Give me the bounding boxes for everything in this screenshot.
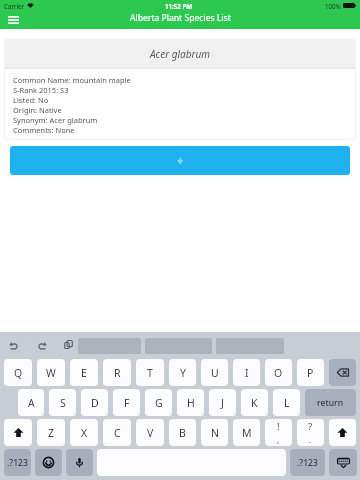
staticText: V [147,426,154,440]
button[interactable]: .?123 [4,449,31,476]
staticText: W [46,366,56,380]
button[interactable]: T [136,359,164,386]
button[interactable]: I [233,359,260,386]
staticText: X [81,426,88,440]
staticText: Listed: No [13,95,49,105]
button[interactable]: Y [169,359,196,386]
button[interactable]: Shift [329,419,356,446]
button[interactable]: Q [4,359,32,386]
staticText: S [60,396,66,410]
staticText: G [155,396,163,410]
button[interactable]: return [305,389,356,416]
button[interactable]: ! [265,419,292,446]
button[interactable]: N [201,419,228,446]
button[interactable]: D [81,389,108,416]
staticText: Y [180,366,186,380]
button[interactable]: Emoji [35,449,62,476]
button[interactable]: W [37,359,65,386]
button[interactable]: Redo [34,337,48,351]
button[interactable]: P [297,359,324,386]
staticText: C [114,426,121,440]
staticText: U [211,366,219,380]
staticText: 11:52 PM [165,2,193,10]
button[interactable]: U [201,359,228,386]
button[interactable]: Z [37,419,65,446]
button[interactable]: V [136,419,164,446]
staticText: . [309,434,312,445]
button[interactable]: C [103,419,131,446]
button[interactable]: ? [297,419,324,446]
staticText: Acer glabrum [150,47,211,61]
staticText: 100% [325,2,341,10]
staticText: Carrier [4,2,25,10]
button[interactable]: Backspace [329,359,356,386]
staticText: F [124,396,130,410]
button[interactable]: K [241,389,268,416]
button[interactable]: A [18,389,44,416]
staticText: K [251,396,258,410]
staticText: H [187,396,195,410]
staticText: E [81,366,87,380]
button[interactable]: E [70,359,98,386]
staticText: Alberta Plant Species List [130,12,231,24]
button[interactable]: Shift [4,419,32,446]
staticText: Z [48,426,55,440]
button[interactable]: Back [10,146,350,175]
staticText: .?123 [7,457,28,469]
staticText: J [221,396,224,410]
staticText: ? [308,420,313,433]
button[interactable]: .?123 [290,449,325,476]
button[interactable]: F [113,389,140,416]
button[interactable]: H [177,389,204,416]
button[interactable]: Hide keyboard [329,449,357,476]
button[interactable]: M [233,419,260,446]
staticText: B [179,426,186,440]
staticText: S-Rank 2015: S3 [13,85,69,95]
staticText: Synonym: Acer glabrum [13,115,98,125]
staticText: R [114,366,121,380]
button[interactable]: J [209,389,236,416]
staticText: .?123 [297,457,318,469]
staticText: O [274,366,283,380]
staticText: return [317,397,344,409]
staticText: ! [277,420,280,433]
button[interactable]: R [103,359,131,386]
button[interactable]: Paste [61,337,75,351]
staticText: Q [14,366,23,380]
staticText: D [91,396,99,410]
button[interactable]: S [49,389,76,416]
staticText: P [307,366,314,380]
button[interactable]: X [70,419,98,446]
staticText: L [284,396,290,410]
button[interactable]: G [145,389,172,416]
button[interactable]: B [169,419,196,446]
staticText: Origin: Native [13,105,62,115]
button[interactable]: Undo [7,337,21,351]
staticText: A [28,396,35,410]
button[interactable]: Dictation [66,449,93,476]
staticText: T [147,366,153,380]
button[interactable]: O [265,359,292,386]
staticText: N [211,426,219,440]
staticText: , [277,434,280,445]
staticText: I [245,366,249,380]
staticText: M [242,426,252,440]
button[interactable]: L [273,389,300,416]
staticText: Comments: None [13,125,75,135]
button[interactable]: Open navigation menu [3,12,23,27]
staticText: Common Name: mountain maple [13,75,131,85]
